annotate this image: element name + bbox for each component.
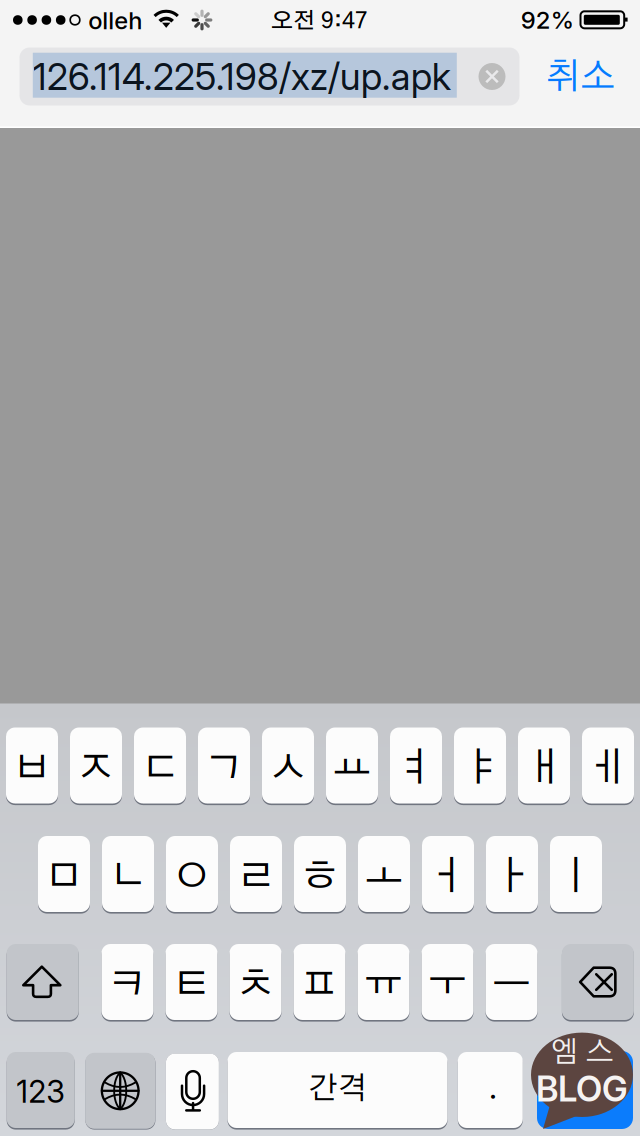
staticText: 123 [16, 1073, 65, 1110]
staticText: 간격 [308, 1074, 366, 1104]
staticText: 126.114.225.198/xz/up.apk [33, 54, 451, 99]
staticText: 92% [521, 5, 574, 34]
button[interactable]: ㅜ [421, 944, 473, 1020]
staticText: ㅑ [460, 748, 500, 788]
staticText: ㅁ [44, 857, 84, 897]
staticText: 오전 9:47 [271, 10, 368, 33]
staticText: ㄹ [236, 857, 276, 897]
button[interactable]: ㅌ [165, 944, 217, 1020]
button[interactable]: ㅣ [550, 836, 602, 912]
staticText: 엠 스 [550, 1038, 613, 1068]
staticText: ㄱ [204, 748, 244, 788]
button[interactable]: Clear text [470, 51, 514, 101]
button[interactable]: 간격 [227, 1052, 447, 1128]
staticText: ㅈ [76, 748, 116, 788]
button[interactable]: ㅕ [390, 727, 442, 803]
staticText: ㅎ [300, 857, 340, 897]
staticText: ㅊ [235, 965, 275, 1005]
button[interactable]: Shift [7, 944, 79, 1020]
button[interactable]: ㅊ [229, 944, 281, 1020]
button[interactable]: Next keyboard [85, 1053, 155, 1129]
button[interactable]: ㅅ [262, 727, 314, 803]
staticText: ㅛ [332, 748, 372, 788]
button[interactable]: ㅁ [38, 836, 90, 912]
button[interactable]: ㅠ [357, 944, 409, 1020]
staticText: ㅇ [172, 857, 212, 897]
button[interactable]: ㅛ [326, 727, 378, 803]
staticText: ㅏ [492, 857, 532, 897]
staticText: 취소 [545, 59, 615, 95]
button[interactable]: ㄱ [198, 727, 250, 803]
button[interactable]: Dictate [166, 1053, 219, 1129]
staticText: ㅕ [396, 748, 436, 788]
button[interactable]: ㅎ [294, 836, 346, 912]
button[interactable]: ㅋ [101, 944, 153, 1020]
button[interactable]: ㅂ [6, 727, 58, 803]
staticText: ㄴ [108, 857, 148, 897]
staticText: . [489, 1068, 497, 1106]
button[interactable]: ㅐ [518, 727, 570, 803]
staticText: ㅐ [524, 748, 564, 788]
button[interactable]: ㅇ [166, 836, 218, 912]
staticText: ㅅ [268, 748, 308, 788]
button[interactable]: ㄴ [102, 836, 154, 912]
button[interactable]: ㅗ [358, 836, 410, 912]
button[interactable]: Delete [562, 944, 634, 1020]
staticText: ㅗ [364, 857, 404, 897]
button[interactable]: ㄹ [230, 836, 282, 912]
staticText: ㄷ [140, 748, 180, 788]
staticText: ㅂ [12, 748, 52, 788]
button[interactable]: ㅏ [486, 836, 538, 912]
button[interactable]: ㅓ [422, 836, 474, 912]
staticText: ㅋ [107, 965, 147, 1005]
staticText: ㅔ [588, 748, 628, 788]
button[interactable]: ㅡ [485, 944, 537, 1020]
button[interactable]: 123 [7, 1052, 75, 1128]
staticText: ㅍ [299, 965, 339, 1005]
button[interactable]: ㄷ [134, 727, 186, 803]
button[interactable]: ㅑ [454, 727, 506, 803]
button[interactable]: 취소 [530, 48, 630, 106]
staticText: BLOG [536, 1068, 628, 1110]
button[interactable]: . [458, 1052, 523, 1128]
staticText: ㅣ [556, 857, 596, 897]
button[interactable]: ㅔ [582, 727, 634, 803]
staticText: ㅠ [363, 965, 403, 1005]
staticText: ㅌ [171, 965, 211, 1005]
staticText: ㅓ [428, 857, 468, 897]
staticText: olleh [88, 6, 142, 35]
staticText: ㅜ [427, 965, 467, 1005]
button[interactable]: ㅍ [293, 944, 345, 1020]
staticText: ㅡ [491, 965, 531, 1005]
button[interactable]: ㅈ [70, 727, 122, 803]
